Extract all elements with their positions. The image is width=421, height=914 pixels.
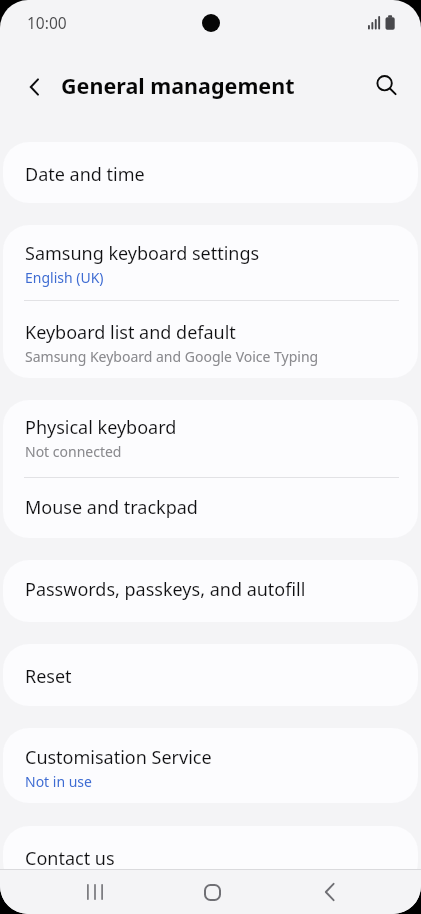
staticText: Mouse and trackpad (25, 495, 198, 520)
staticText: Samsung keyboard settings (25, 241, 260, 266)
staticText: Passwords, passkeys, and autofill (25, 577, 306, 602)
staticText: Physical keyboard (25, 415, 177, 440)
button[interactable]: Samsung keyboard settings (3, 225, 418, 300)
button[interactable]: Mouse and trackpad (3, 478, 418, 538)
button[interactable]: Customisation Service (3, 728, 418, 803)
staticText: Customisation Service (25, 745, 212, 770)
button[interactable]: Contact us (3, 826, 418, 888)
staticText: Samsung Keyboard and Google Voice Typing (25, 347, 319, 366)
button[interactable]: Keyboard list and default (3, 301, 418, 378)
staticText: Keyboard list and default (25, 320, 236, 345)
button[interactable] (16, 68, 54, 106)
button[interactable] (190, 870, 234, 914)
staticText: English (UK) (25, 268, 104, 287)
button[interactable] (308, 870, 352, 914)
staticText: Not in use (25, 772, 92, 791)
button[interactable] (73, 870, 117, 914)
staticText: Not connected (25, 442, 122, 461)
button[interactable]: Physical keyboard (3, 400, 418, 477)
staticText: 10:00 (27, 12, 67, 33)
button[interactable]: Passwords, passkeys, and autofill (3, 560, 418, 622)
staticText: Contact us (25, 846, 115, 871)
staticText: General management (61, 71, 295, 100)
button[interactable]: Reset (3, 644, 418, 706)
button[interactable] (367, 66, 407, 106)
staticText: Reset (25, 664, 72, 689)
staticText: Date and time (25, 162, 145, 187)
button[interactable]: Date and time (3, 142, 418, 203)
